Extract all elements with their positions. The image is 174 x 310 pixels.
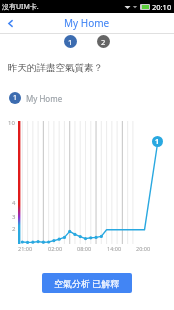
staticText: 1 (155, 137, 160, 147)
staticText: 21:00 (18, 245, 33, 252)
staticText: My Home (64, 16, 110, 30)
staticText: 10 (8, 119, 15, 127)
staticText: 1 (68, 37, 73, 47)
staticText: 2 (101, 37, 106, 47)
staticText: 昨天的詳盡空氣質素？ (8, 62, 103, 74)
staticText: 20:00 (136, 245, 151, 252)
staticText: 14:00 (107, 245, 122, 252)
button[interactable]: Back (0, 13, 20, 33)
staticText: 空氣分析 已解釋 (54, 277, 120, 289)
staticText: 1 (13, 93, 18, 103)
staticText: 4 (12, 199, 16, 207)
staticText: My Home (26, 93, 63, 104)
staticText: 3 (12, 213, 16, 221)
staticText: 沒有UIM卡. (2, 2, 39, 12)
button[interactable]: 1 (64, 35, 77, 48)
staticText: 02:00 (48, 245, 63, 252)
staticText: 08:00 (77, 245, 92, 252)
button[interactable]: 2 (97, 35, 110, 48)
staticText: 20:10 (152, 2, 172, 12)
staticText: 2 (12, 225, 16, 233)
button[interactable]: 空氣分析 已解釋 (42, 273, 132, 293)
